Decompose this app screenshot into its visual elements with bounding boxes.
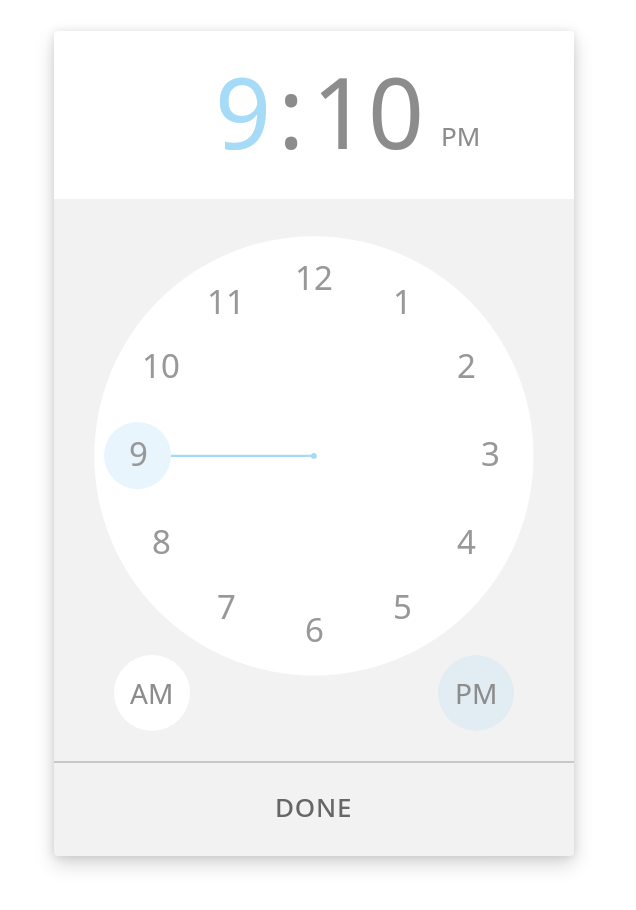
button[interactable]: 9 bbox=[105, 420, 171, 486]
staticText: AM bbox=[130, 674, 174, 712]
staticText: 6 bbox=[305, 607, 324, 652]
button[interactable]: 2 bbox=[433, 332, 499, 398]
staticText: 9 bbox=[129, 431, 148, 476]
staticText: 8 bbox=[152, 519, 171, 564]
button[interactable]: 8 bbox=[128, 508, 194, 574]
staticText: 5 bbox=[393, 584, 412, 629]
staticText: 10 bbox=[142, 343, 180, 388]
button[interactable]: PM bbox=[438, 655, 514, 731]
staticText: 12 bbox=[295, 255, 333, 300]
button[interactable]: 12 bbox=[281, 244, 347, 310]
staticText: 2 bbox=[457, 343, 476, 388]
button[interactable]: 6 bbox=[281, 596, 347, 662]
staticText: PM bbox=[455, 674, 498, 712]
staticText: DONE bbox=[275, 789, 353, 824]
button[interactable]: 1 bbox=[369, 268, 435, 334]
staticText: : bbox=[278, 44, 305, 177]
button[interactable]: 10 bbox=[128, 332, 194, 398]
staticText: 4 bbox=[457, 519, 476, 564]
staticText: 9 bbox=[215, 44, 272, 177]
staticText: 11 bbox=[207, 279, 245, 324]
button[interactable]: 3 bbox=[457, 420, 523, 486]
staticText: PM bbox=[441, 118, 481, 153]
button[interactable]: DONE bbox=[54, 762, 574, 850]
staticText: 10 bbox=[312, 44, 425, 177]
staticText: 3 bbox=[481, 431, 500, 476]
button[interactable]: 5 bbox=[369, 573, 435, 639]
button[interactable]: Select minutes bbox=[310, 44, 418, 154]
button[interactable]: AM bbox=[114, 655, 190, 731]
button[interactable]: PM bbox=[441, 118, 481, 153]
button[interactable]: 11 bbox=[193, 268, 259, 334]
button[interactable]: 4 bbox=[433, 508, 499, 574]
staticText: 1 bbox=[393, 279, 412, 324]
button[interactable]: 7 bbox=[193, 573, 259, 639]
staticText: 7 bbox=[217, 584, 236, 629]
button[interactable]: Select hour bbox=[212, 44, 264, 154]
